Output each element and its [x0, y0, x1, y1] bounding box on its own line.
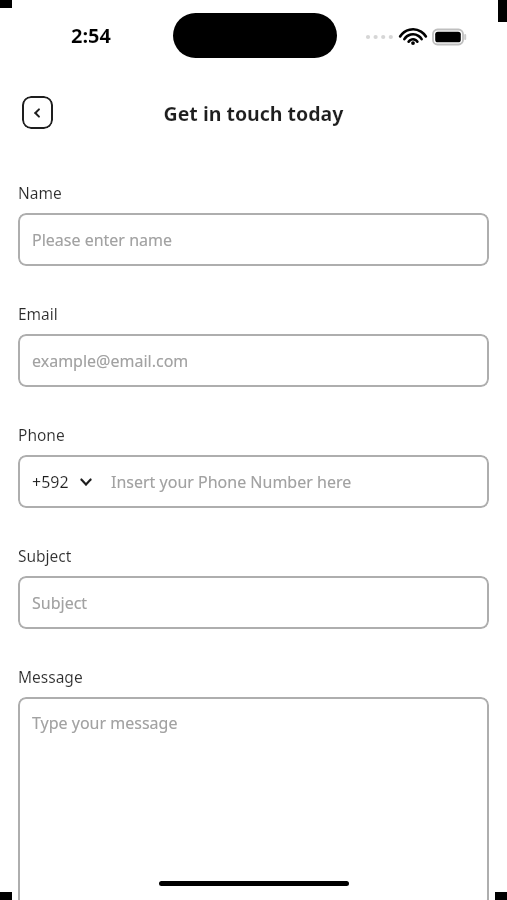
staticText: Message: [18, 666, 83, 687]
button[interactable]: Subject: [18, 576, 489, 629]
staticText: Phone: [18, 424, 65, 445]
staticText: Name: [18, 182, 62, 203]
staticText: +592: [32, 471, 69, 493]
staticText: 2:54: [71, 22, 111, 49]
staticText: example@email.com: [32, 350, 189, 372]
staticText: Get in touch today: [0, 100, 507, 127]
staticText: Subject: [18, 545, 72, 566]
staticText: Type your message: [32, 712, 178, 734]
button[interactable]: example@email.com: [18, 334, 489, 387]
button[interactable]: Please enter name: [18, 213, 489, 266]
button[interactable]: Back: [22, 96, 53, 129]
button[interactable]: Type your message: [18, 697, 489, 900]
staticText: Insert your Phone Number here: [111, 471, 352, 493]
button[interactable]: Select country code: [18, 455, 489, 508]
staticText: Subject: [32, 592, 88, 614]
staticText: Please enter name: [32, 229, 172, 251]
button[interactable]: Select country code: [32, 471, 93, 493]
staticText: Email: [18, 303, 58, 324]
